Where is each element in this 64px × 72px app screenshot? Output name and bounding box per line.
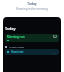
staticText: 128 <box>52 51 57 54</box>
button[interactable]: Morning run <box>5 34 59 42</box>
button[interactable]: Heart rate <box>5 49 59 55</box>
staticText: Today <box>5 26 16 31</box>
staticText: Heart rate <box>11 50 24 54</box>
staticText: Running in the morning <box>16 7 48 11</box>
staticText: 5.2 <box>53 35 57 39</box>
staticText: Activity rings <box>9 45 25 48</box>
staticText: Morning run <box>7 35 25 39</box>
staticText: Today <box>27 2 37 6</box>
